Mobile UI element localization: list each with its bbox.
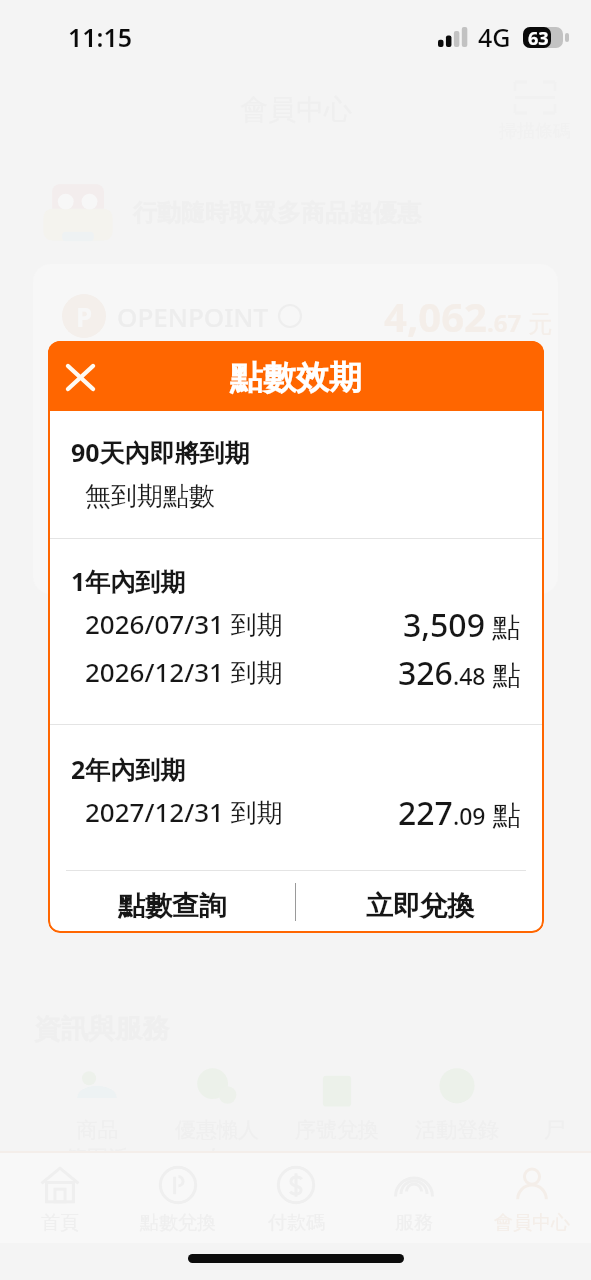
staticText: 1年內到期 [71,564,186,598]
staticText: 63 [528,26,549,47]
staticText: 2年內到期 [71,752,186,786]
button[interactable]: 立即兌換 [296,871,544,933]
staticText: 326.48 點 [398,651,521,695]
staticText: .67 [487,306,522,339]
staticText: 4,062 [384,289,487,343]
staticText: 11:15 [68,20,133,54]
staticText: 227.09 點 [398,791,521,835]
staticText: 立即兌換 [366,889,474,923]
button[interactable]: 優惠懶人 包 [157,1066,277,1171]
staticText: 點數兌換 [140,1211,216,1235]
staticText: 元 [528,309,552,339]
staticText: 首頁 [41,1211,79,1235]
staticText: 優惠懶人 包 [175,1117,259,1171]
staticText: 2026/07/31 到期 [85,606,283,642]
staticText: 無到期點數 [85,480,215,513]
button[interactable]: 會員中心 [473,1153,591,1235]
staticText: 4G [478,20,511,54]
button[interactable]: 點數查詢 [48,871,295,933]
staticText: 2026/12/31 到期 [85,654,283,690]
button[interactable]: Close [55,350,106,402]
staticText: 會員中心 [494,1211,570,1235]
staticText: 點數查詢 [118,889,226,923]
staticText: 點數效期 [230,357,362,399]
staticText: 90天內即將到期 [71,435,250,469]
staticText: 3,509 點 [403,603,521,647]
staticText: 2027/12/31 到期 [85,794,283,830]
staticText: 服務 [395,1211,433,1235]
staticText: OPENPOINT [117,299,269,334]
button[interactable]: 活動登錄 [397,1066,517,1143]
staticText: 付款碼 [268,1211,325,1235]
staticText: P [76,299,93,334]
staticText: 商品 範圍派 [66,1117,129,1171]
